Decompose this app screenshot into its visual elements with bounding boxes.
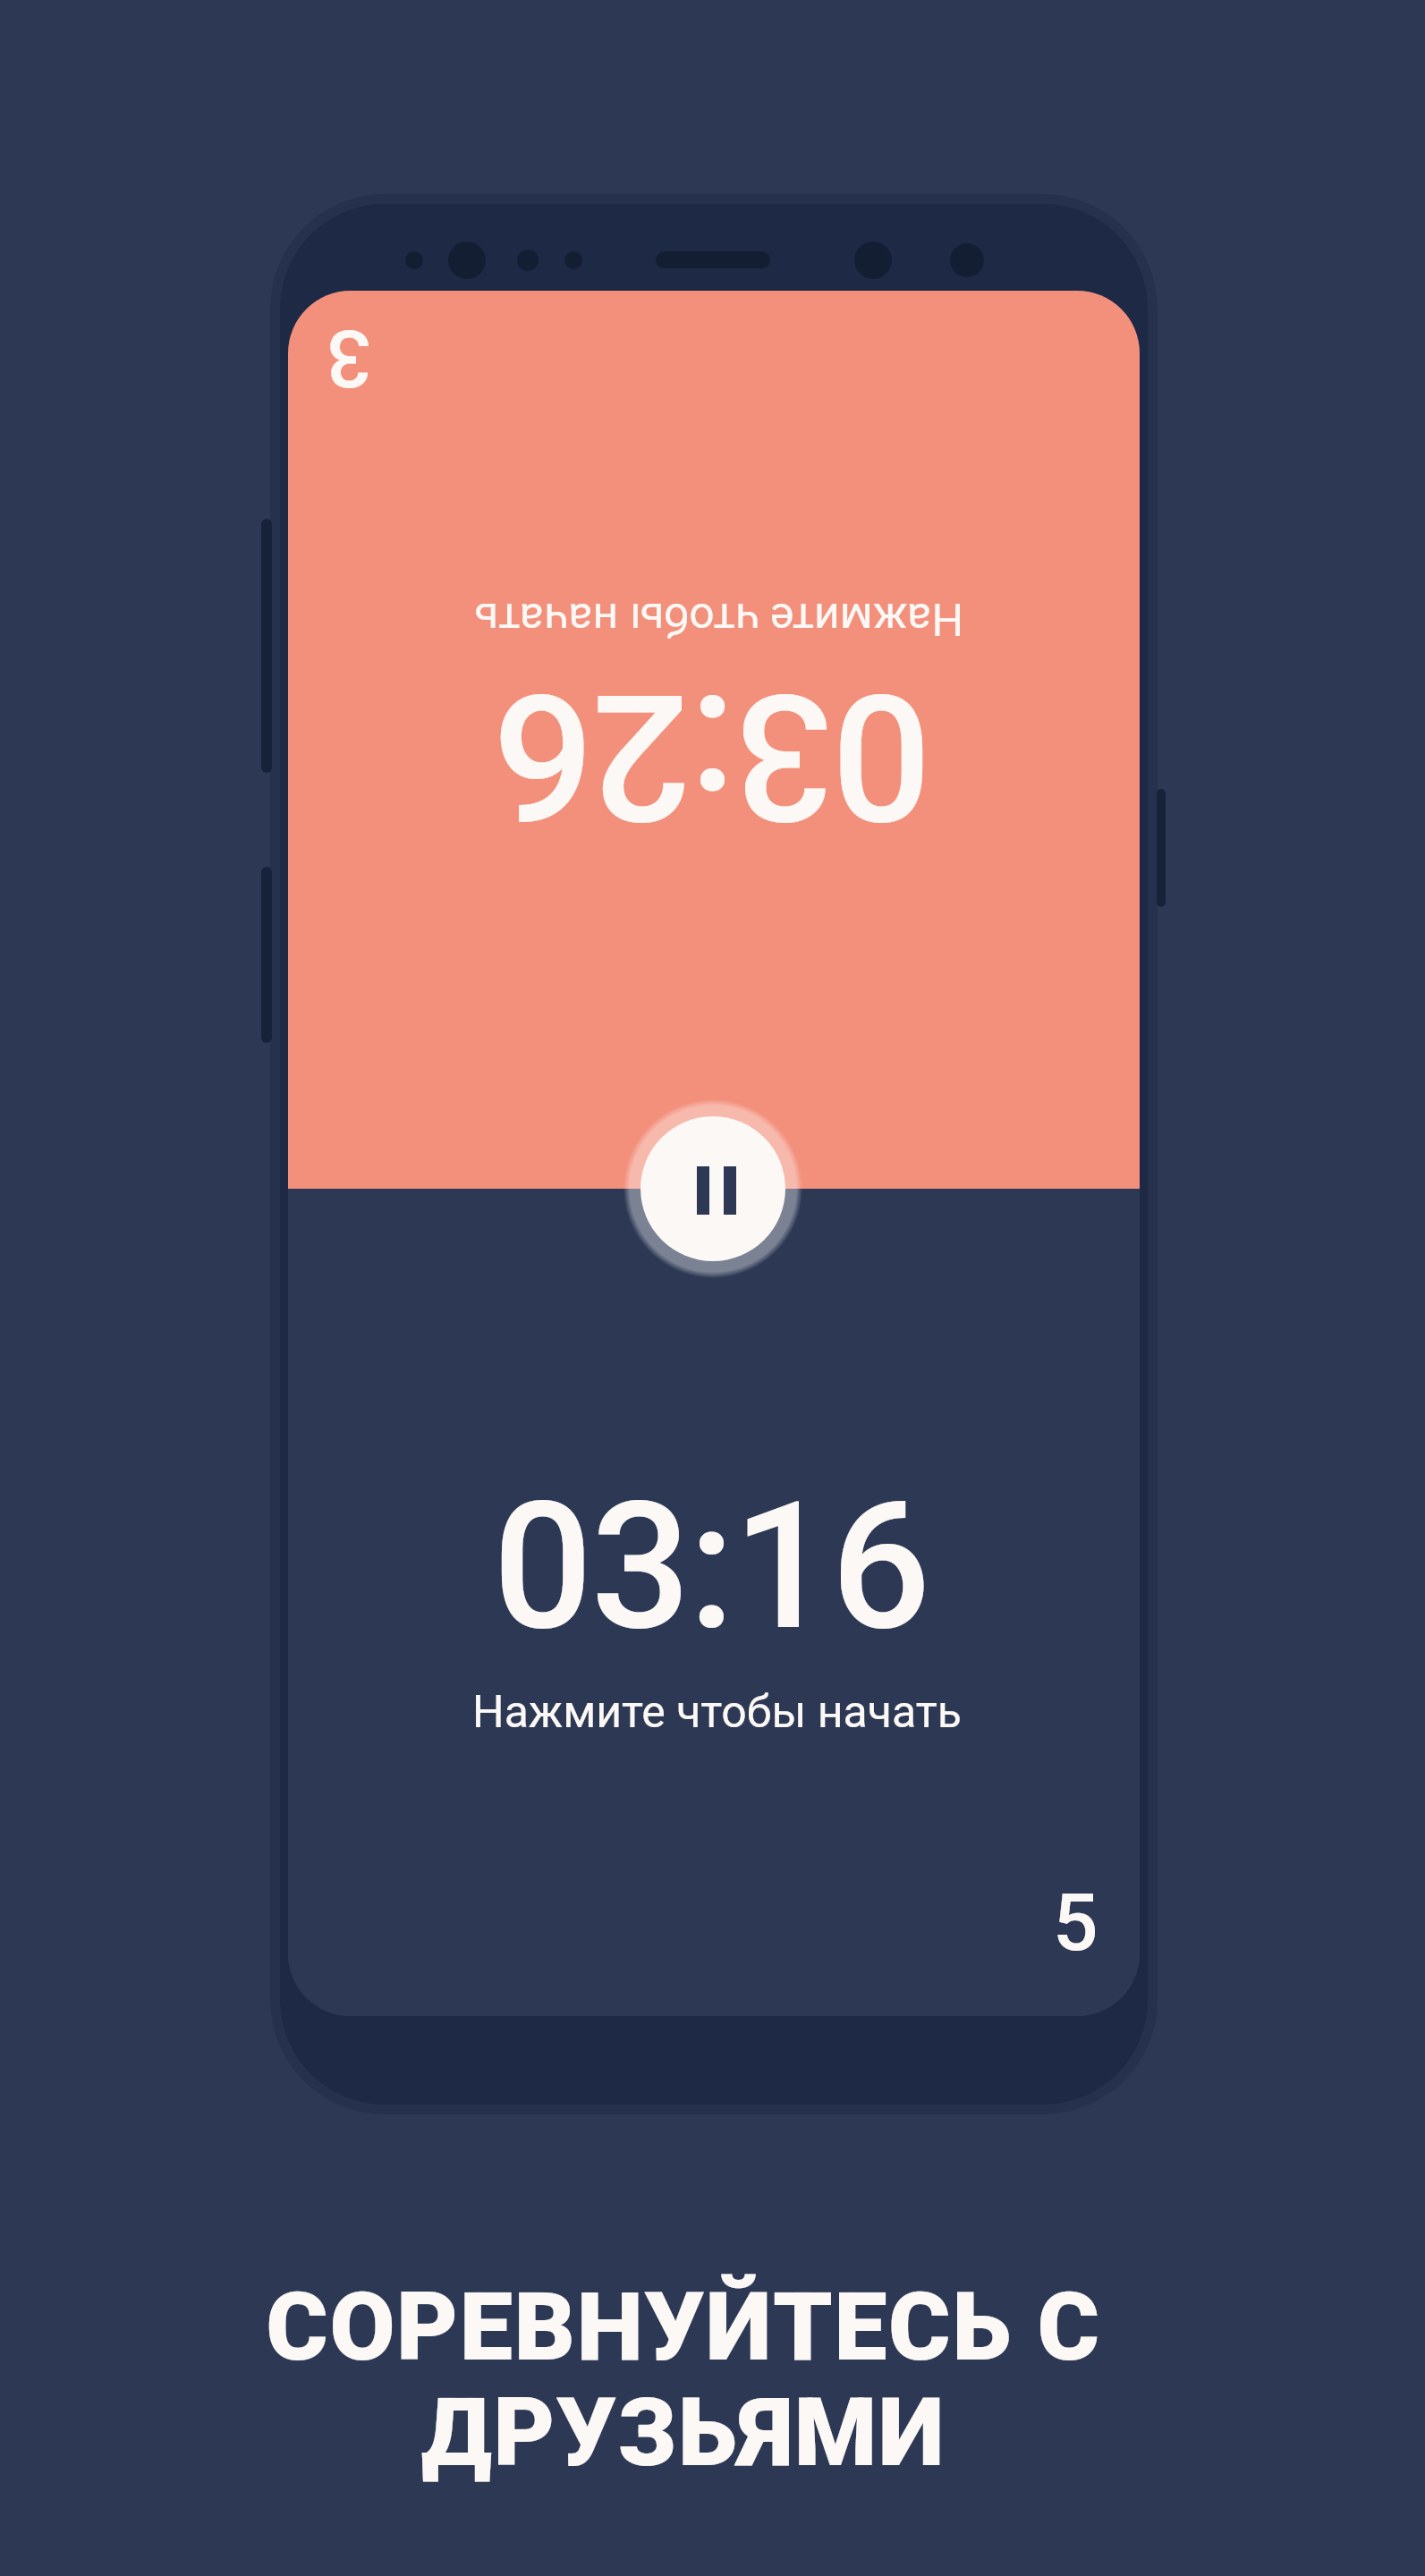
staticText: Нажмите чтобы начать: [472, 1686, 962, 1739]
staticText: 03:16: [493, 1464, 929, 1670]
staticText: 5: [1053, 1876, 1098, 1969]
staticText: СОРЕВНУЙТЕСЬ С ДРУЗЬЯМИ: [266, 2272, 1101, 2488]
button[interactable]: Player two clock 03:16: [288, 1189, 1140, 2016]
staticText: 3: [326, 312, 371, 405]
staticText: 03:26: [495, 653, 931, 859]
button[interactable]: Pause: [623, 1099, 802, 1278]
staticText: Нажмите чтобы начать: [474, 592, 963, 645]
button[interactable]: Player one clock 03:26: [288, 291, 1140, 1189]
